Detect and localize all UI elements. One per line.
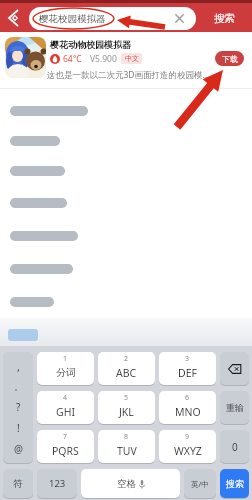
button[interactable] bbox=[0, 289, 252, 315]
staticText: ? bbox=[16, 400, 21, 414]
button[interactable]: 搜索 bbox=[196, 7, 252, 30]
staticText: ! bbox=[17, 421, 20, 435]
staticText: 樱花动物校园模拟器 bbox=[50, 39, 131, 50]
staticText: 2 bbox=[124, 354, 129, 364]
button[interactable]: 樱花校园模拟器 bbox=[29, 7, 196, 30]
button[interactable]: 1 bbox=[37, 352, 94, 385]
button[interactable]: 符 bbox=[3, 469, 33, 498]
button[interactable]: 0 bbox=[220, 430, 249, 463]
staticText: V5.900 bbox=[90, 53, 117, 65]
button[interactable]: 7 bbox=[37, 430, 94, 463]
button[interactable] bbox=[0, 128, 252, 154]
staticText: WXYZ bbox=[174, 444, 202, 458]
button[interactable]: 9 bbox=[159, 430, 216, 463]
staticText: 搜索 bbox=[214, 12, 235, 25]
staticText: 分词 bbox=[56, 366, 76, 379]
button[interactable] bbox=[0, 158, 252, 184]
staticText: @ bbox=[14, 442, 23, 456]
staticText: 英/中 bbox=[191, 479, 209, 489]
staticText: 4 bbox=[63, 393, 68, 403]
staticText: 123 bbox=[49, 477, 66, 490]
button[interactable] bbox=[0, 190, 252, 216]
button[interactable] bbox=[220, 352, 249, 385]
button[interactable]: 搜索 bbox=[220, 469, 249, 498]
button[interactable] bbox=[0, 256, 252, 282]
button[interactable]: 5 bbox=[98, 391, 155, 424]
button[interactable]: 123 bbox=[37, 469, 77, 498]
staticText: 这也是一款以二次元3D画面打造的校园模... bbox=[47, 69, 225, 81]
button[interactable]: 下载 bbox=[215, 51, 244, 66]
staticText: GHI bbox=[56, 405, 75, 419]
staticText: 搜索 bbox=[226, 478, 244, 489]
button[interactable] bbox=[0, 98, 252, 124]
staticText: MNO bbox=[175, 405, 201, 419]
staticText: 。 bbox=[14, 381, 23, 392]
staticText: 7 bbox=[63, 432, 68, 442]
button[interactable] bbox=[0, 223, 252, 249]
button[interactable]: 2 bbox=[98, 352, 155, 385]
button[interactable]: 3 bbox=[159, 352, 216, 385]
staticText: 5 bbox=[124, 393, 129, 403]
staticText: 重输 bbox=[226, 402, 244, 413]
button[interactable]: 6 bbox=[159, 391, 216, 424]
staticText: JKL bbox=[119, 405, 134, 419]
button[interactable]: 4 bbox=[37, 391, 94, 424]
staticText: TUV bbox=[117, 444, 137, 458]
staticText: DEF bbox=[178, 366, 197, 380]
staticText: ABC bbox=[116, 366, 137, 380]
staticText: 3 bbox=[185, 354, 190, 364]
button[interactable]: 英/中 bbox=[184, 469, 216, 498]
staticText: 0 bbox=[232, 440, 238, 454]
staticText: 1 bbox=[63, 354, 68, 364]
staticText: , bbox=[17, 359, 20, 374]
staticText: 符 bbox=[13, 478, 23, 490]
button[interactable]: , bbox=[3, 352, 33, 463]
staticText: 下载 bbox=[222, 54, 238, 64]
button[interactable]: 8 bbox=[98, 430, 155, 463]
button[interactable] bbox=[0, 32, 252, 88]
staticText: 64°C bbox=[63, 53, 82, 65]
button[interactable]: 空格 bbox=[81, 469, 180, 498]
staticText: PQRS bbox=[52, 444, 79, 458]
button[interactable] bbox=[4, 7, 26, 29]
staticText: 中文 bbox=[125, 54, 139, 63]
button[interactable]: 重输 bbox=[220, 391, 249, 424]
staticText: 6 bbox=[185, 393, 190, 403]
staticText: 9 bbox=[185, 432, 190, 442]
staticText: 8 bbox=[124, 432, 129, 442]
staticText: 樱花校园模拟器 bbox=[39, 13, 106, 25]
staticText: 空格 bbox=[117, 478, 136, 490]
